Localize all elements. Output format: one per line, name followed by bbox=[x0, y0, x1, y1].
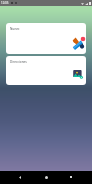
button[interactable]: Direcciones bbox=[6, 56, 86, 85]
staticText: Nuevo bbox=[10, 27, 20, 31]
staticText: Direcciones bbox=[10, 60, 27, 64]
button[interactable]: Nuevo bbox=[6, 23, 86, 54]
button[interactable]: Home bbox=[40, 171, 52, 183]
button[interactable]: Recents bbox=[65, 171, 77, 183]
staticText: 12:05 bbox=[1, 1, 9, 5]
button[interactable]: Back bbox=[14, 171, 26, 183]
